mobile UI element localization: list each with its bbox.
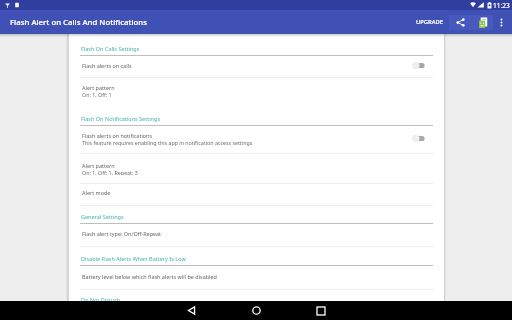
button[interactable]: SHAREit xyxy=(471,10,493,34)
button[interactable]: Flash alert type: On/Off-Repeat xyxy=(69,230,444,237)
staticText: Flash On Notifications Settings xyxy=(81,115,161,122)
staticText: Alert pattern xyxy=(82,84,115,91)
staticText: This feature requires enabling this app … xyxy=(82,139,253,146)
button[interactable]: Alert mode xyxy=(69,189,444,196)
button[interactable]: Battery level below which flash alerts w… xyxy=(69,273,444,280)
staticText: Alert mode xyxy=(82,189,111,196)
staticText: On: 1, Off: 1 xyxy=(82,91,112,98)
staticText: Disable Flash Alerts When Battery Is Low xyxy=(81,255,186,262)
staticText: Do Not Disturb xyxy=(81,296,120,303)
button[interactable]: Flash alerts on notifications xyxy=(69,131,444,146)
button[interactable]: Alert pattern xyxy=(69,162,444,175)
staticText: Flash alerts on calls xyxy=(82,62,132,69)
button[interactable]: Recent apps xyxy=(302,301,340,320)
staticText: Flash alerts on notifications xyxy=(82,132,153,139)
staticText: UPGRADE xyxy=(416,18,443,26)
staticText: Battery level below which flash alerts w… xyxy=(82,273,217,280)
staticText: Flash On Calls Settings xyxy=(81,45,140,52)
button[interactable]: Alert pattern xyxy=(69,84,444,98)
button[interactable]: Home xyxy=(237,301,275,320)
staticText: On: 1, Off: 1, Repeat: 3 xyxy=(82,169,138,175)
button[interactable]: UPGRADE xyxy=(411,13,448,31)
button[interactable]: Back xyxy=(172,301,210,320)
staticText: Alert pattern xyxy=(82,162,115,169)
button[interactable]: More options xyxy=(493,10,510,34)
staticText: Flash alert type: On/Off-Repeat xyxy=(82,230,162,237)
button[interactable]: Share xyxy=(449,10,471,34)
staticText: Flash Alert on Calls And Notifications xyxy=(10,17,147,28)
staticText: 11:23 xyxy=(493,1,510,10)
button[interactable]: Flash alerts on calls xyxy=(69,62,444,69)
staticText: General Settings xyxy=(81,213,124,220)
